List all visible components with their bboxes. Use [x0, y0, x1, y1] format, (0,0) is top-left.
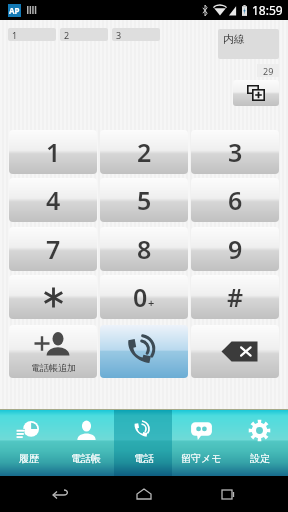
button[interactable]: 9 — [191, 227, 279, 271]
staticText: 9 — [228, 232, 243, 266]
staticText: 2 — [137, 135, 152, 169]
staticText: 4 — [46, 183, 61, 217]
button[interactable]: 5 — [100, 178, 188, 222]
button[interactable]: 履歴 — [0, 409, 57, 476]
staticText: 留守メモ — [181, 452, 222, 465]
button[interactable]: Home — [120, 476, 168, 512]
staticText: 3 — [228, 135, 243, 169]
staticText: AP — [9, 5, 20, 16]
staticText: 1 — [46, 135, 61, 169]
staticText: 0 — [133, 280, 148, 314]
button[interactable]: 設定 — [230, 409, 288, 476]
button[interactable]: 4 — [9, 178, 97, 222]
button[interactable]: Back — [36, 476, 84, 512]
staticText: 設定 — [250, 452, 270, 465]
button[interactable]: Add to contacts — [9, 325, 97, 378]
button[interactable]: # — [191, 275, 279, 319]
staticText: 履歴 — [19, 452, 39, 465]
staticText: 29 — [263, 65, 274, 77]
staticText: 1 — [12, 29, 18, 41]
button[interactable]: Recents — [204, 476, 252, 512]
staticText: + — [148, 295, 155, 310]
button[interactable]: 内線 — [218, 29, 279, 59]
staticText: # — [227, 280, 244, 314]
button[interactable]: 留守メモ — [172, 409, 230, 476]
staticText: 電話 — [134, 452, 154, 465]
button[interactable]: 電話帳 — [57, 409, 114, 476]
button[interactable]: Backspace — [191, 325, 279, 378]
staticText: 電話帳追加 — [31, 362, 76, 373]
button[interactable]: 1 — [8, 28, 56, 41]
button[interactable]: 1 — [9, 130, 97, 174]
staticText: 2 — [64, 29, 70, 41]
staticText: 3 — [116, 29, 122, 41]
button[interactable]: 3 — [112, 28, 160, 41]
button[interactable]: 6 — [191, 178, 279, 222]
staticText: 5 — [137, 183, 152, 217]
button[interactable]: 0 — [100, 275, 188, 319]
staticText: 8 — [137, 232, 152, 266]
button[interactable]: Add line — [233, 80, 279, 106]
staticText: 6 — [228, 183, 243, 217]
button[interactable] — [9, 275, 97, 319]
staticText: 内線 — [223, 32, 245, 46]
staticText: 7 — [46, 232, 61, 266]
button[interactable]: 7 — [9, 227, 97, 271]
staticText: 18:59 — [252, 2, 283, 18]
button[interactable]: 8 — [100, 227, 188, 271]
button[interactable]: 電話 — [114, 409, 172, 476]
button[interactable]: Call — [100, 325, 188, 378]
button[interactable]: 2 — [100, 130, 188, 174]
button[interactable]: 3 — [191, 130, 279, 174]
button[interactable]: 2 — [60, 28, 108, 41]
staticText: 電話帳 — [71, 452, 101, 465]
